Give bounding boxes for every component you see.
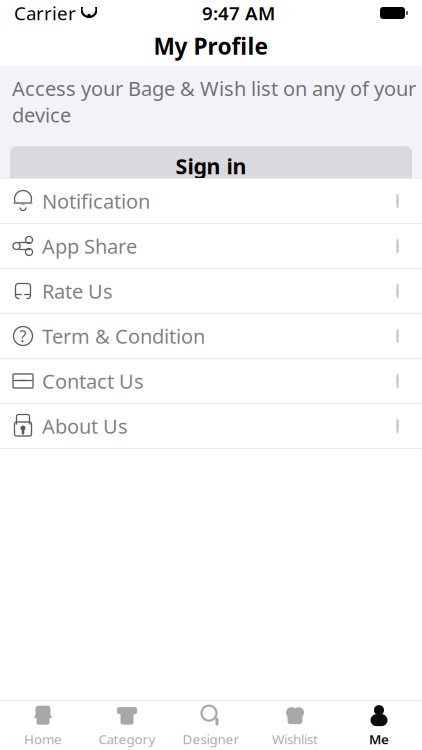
staticText: Wishlist	[272, 730, 318, 748]
staticText: App Share	[42, 233, 137, 259]
button[interactable]: Sign in	[10, 146, 412, 186]
staticText: Rate Us	[42, 278, 113, 304]
button[interactable]: Category	[85, 701, 169, 750]
staticText: 9:47 AM	[202, 1, 275, 25]
staticText: Home	[24, 730, 62, 748]
button[interactable]: Designer	[169, 701, 253, 750]
staticText: ?	[19, 325, 26, 347]
staticText: Carrier	[14, 1, 76, 25]
button[interactable]: Contact Us	[0, 359, 422, 403]
button[interactable]: Me	[337, 701, 421, 750]
staticText: Me	[369, 730, 389, 748]
staticText: Access your Bage & Wish list on any of y…	[12, 75, 416, 128]
staticText: Sign in	[175, 152, 246, 180]
button[interactable]: Rate Us	[0, 269, 422, 313]
button[interactable]: App Share	[0, 224, 422, 268]
button[interactable]: Wishlist	[253, 701, 337, 750]
button[interactable]: Notification	[0, 179, 422, 223]
staticText: Contact Us	[42, 368, 144, 394]
staticText: Term & Condition	[42, 323, 205, 349]
staticText: Designer	[182, 730, 239, 748]
staticText: My Profile	[153, 31, 268, 61]
button[interactable]: Home	[1, 701, 85, 750]
staticText: Notification	[42, 188, 150, 214]
button[interactable]: About Us	[0, 404, 422, 448]
staticText: Category	[98, 730, 155, 748]
staticText: About Us	[42, 413, 128, 439]
button[interactable]: ?	[0, 314, 422, 358]
